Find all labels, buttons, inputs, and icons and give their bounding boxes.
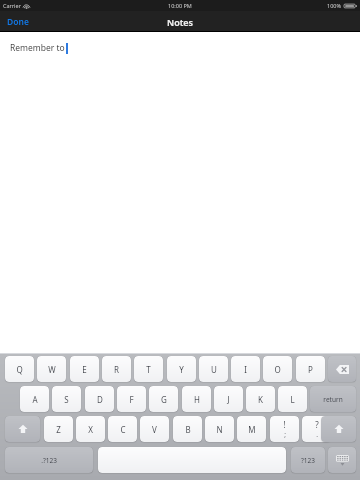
button[interactable]: O (263, 356, 292, 382)
staticText: ! (283, 419, 286, 430)
staticText: J (227, 394, 230, 405)
button[interactable]: F (117, 386, 146, 412)
button[interactable]: Z (44, 416, 73, 442)
staticText: Y (179, 364, 184, 375)
staticText: 100% (327, 2, 342, 9)
button[interactable]: Y (167, 356, 196, 382)
button[interactable]: J (214, 386, 243, 412)
staticText: . (316, 430, 318, 439)
button[interactable]: D (85, 386, 114, 412)
staticText: Z (56, 424, 61, 435)
button[interactable]: U (199, 356, 228, 382)
staticText: Remember to (10, 42, 65, 54)
button[interactable]: ! (270, 416, 299, 442)
button[interactable]: L (278, 386, 307, 412)
button[interactable]: Shift (321, 416, 356, 442)
staticText: S (64, 394, 69, 405)
button[interactable]: K (246, 386, 275, 412)
button[interactable]: return (310, 386, 356, 412)
button[interactable]: ?123 (291, 447, 325, 473)
staticText: V (152, 424, 157, 435)
staticText: Q (16, 364, 23, 375)
staticText: ; (284, 430, 286, 439)
staticText: Notes (167, 16, 194, 28)
staticText: .?123 (41, 456, 57, 465)
button[interactable]: I (231, 356, 260, 382)
staticText: X (88, 424, 93, 435)
staticText: return (323, 395, 343, 404)
button[interactable]: G (149, 386, 178, 412)
staticText: R (114, 364, 119, 375)
staticText: E (82, 364, 87, 375)
staticText: Carrier (3, 2, 21, 9)
button[interactable]: E (70, 356, 99, 382)
staticText: F (129, 394, 134, 405)
staticText: O (274, 364, 281, 375)
button[interactable]: X (76, 416, 105, 442)
button[interactable]: C (108, 416, 137, 442)
button[interactable]: Remember to (0, 32, 360, 353)
button[interactable]: .?123 (5, 447, 93, 473)
staticText: T (146, 364, 151, 375)
staticText: U (211, 364, 217, 375)
button[interactable]: T (134, 356, 163, 382)
staticText: M (248, 424, 256, 435)
staticText: K (258, 394, 263, 405)
staticText: ? (315, 419, 319, 430)
button[interactable]: R (102, 356, 131, 382)
staticText: H (194, 394, 200, 405)
button[interactable]: Q (5, 356, 34, 382)
staticText: Done (7, 16, 29, 28)
staticText: C (120, 424, 126, 435)
button[interactable]: ? (302, 416, 331, 442)
staticText: W (48, 364, 56, 375)
staticText: N (216, 424, 223, 435)
staticText: P (308, 364, 313, 375)
button[interactable]: N (205, 416, 234, 442)
staticText: A (32, 394, 38, 405)
staticText: D (97, 394, 103, 405)
staticText: L (290, 394, 295, 405)
staticText: B (185, 424, 191, 435)
button[interactable]: V (140, 416, 169, 442)
button[interactable]: Hide keyboard (328, 447, 356, 473)
button[interactable]: B (173, 416, 202, 442)
staticText: I (244, 364, 247, 375)
button[interactable] (98, 447, 286, 473)
button[interactable]: A (20, 386, 49, 412)
button[interactable]: Backspace (328, 356, 356, 382)
staticText: 10:00 PM (168, 2, 192, 9)
button[interactable]: H (182, 386, 211, 412)
button[interactable]: Done (0, 13, 36, 31)
button[interactable]: W (37, 356, 66, 382)
button[interactable]: P (296, 356, 325, 382)
button[interactable]: Shift (5, 416, 40, 442)
staticText: ?123 (301, 456, 315, 465)
button[interactable]: M (237, 416, 266, 442)
staticText: G (161, 394, 167, 405)
button[interactable]: S (52, 386, 81, 412)
